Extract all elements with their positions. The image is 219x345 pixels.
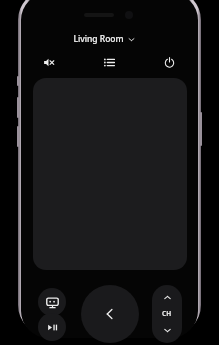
button[interactable]: Channel down	[152, 318, 182, 343]
staticText: CH	[162, 309, 172, 318]
button[interactable]: Input source	[38, 288, 66, 316]
button[interactable]: Channel up	[152, 285, 182, 309]
button[interactable]: Living Room	[69, 31, 139, 47]
staticText: Living Room	[73, 33, 124, 45]
button[interactable]: Play or pause	[38, 313, 66, 341]
button[interactable]: Mute	[38, 52, 58, 72]
button[interactable]: Guide	[99, 52, 119, 72]
button[interactable]: Back	[81, 285, 139, 343]
button[interactable]: Power	[159, 52, 179, 72]
